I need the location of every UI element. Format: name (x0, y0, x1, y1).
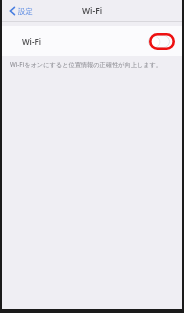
button[interactable]: Wi-Fi をオン (148, 35, 170, 48)
staticText: Wi-Fi (82, 5, 103, 17)
button[interactable]: Wi-Fi (2, 26, 182, 56)
staticText: Wi-Fi (22, 36, 42, 47)
staticText: Wi-Fiをオンにすると位置情報の正確性が向上します。 (10, 60, 163, 68)
button[interactable]: 設定 (7, 3, 35, 19)
staticText: 設定 (18, 7, 33, 16)
